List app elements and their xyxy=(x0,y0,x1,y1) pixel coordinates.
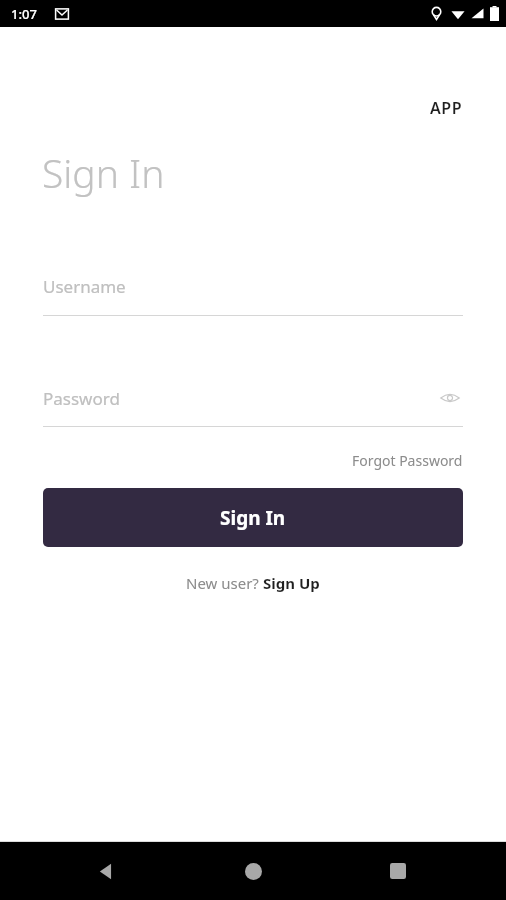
staticText: Sign Up xyxy=(263,573,320,593)
staticText: Forgot Password xyxy=(352,451,463,470)
button[interactable]: Username xyxy=(43,275,463,316)
staticText: 1:07 xyxy=(11,5,37,23)
staticText: Password xyxy=(43,387,120,410)
staticText: Sign In xyxy=(42,146,165,199)
button[interactable]: Sign In xyxy=(43,488,463,547)
button[interactable]: Forgot Password xyxy=(349,448,466,473)
staticText: APP xyxy=(430,97,463,119)
staticText: Sign In xyxy=(220,505,286,531)
staticText: New user? xyxy=(186,573,263,593)
button[interactable]: Show password xyxy=(437,385,463,411)
button[interactable]: APP xyxy=(426,94,467,122)
staticText: Username xyxy=(43,275,126,298)
button[interactable]: Home xyxy=(231,849,275,893)
button[interactable]: Password xyxy=(43,385,463,411)
button[interactable]: Recent apps xyxy=(376,849,420,893)
button[interactable]: Back xyxy=(84,849,128,893)
button[interactable]: Sign Up xyxy=(263,573,320,593)
